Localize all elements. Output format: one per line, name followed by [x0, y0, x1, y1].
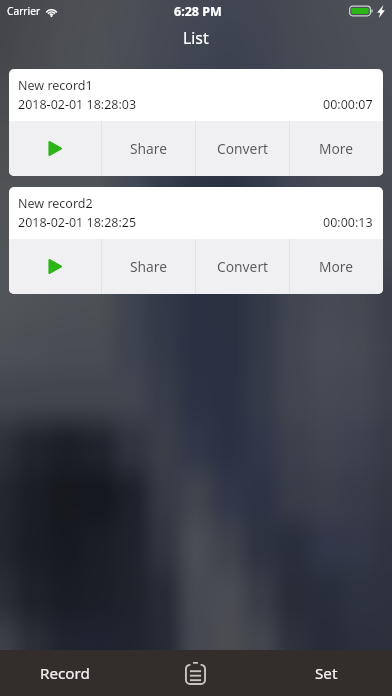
staticText: Share — [130, 257, 168, 276]
button[interactable]: Share — [102, 239, 195, 294]
staticText: 2018-02-01 18:28:03 — [18, 96, 137, 113]
button[interactable]: More — [290, 239, 383, 294]
staticText: New record2 — [18, 195, 93, 212]
button[interactable]: Play — [9, 239, 101, 294]
staticText: Record — [40, 663, 90, 684]
staticText: 2018-02-01 18:28:25 — [18, 214, 137, 231]
button[interactable]: Share — [102, 121, 195, 176]
staticText: Share — [130, 139, 168, 158]
button[interactable]: Convert — [196, 239, 289, 294]
staticText: More — [319, 257, 354, 276]
button[interactable]: Record — [0, 650, 130, 696]
staticText: Convert — [217, 257, 269, 276]
staticText: 00:00:13 — [323, 214, 373, 231]
staticText: 00:00:07 — [323, 96, 373, 113]
staticText: List — [183, 27, 209, 49]
staticText: New record1 — [18, 77, 93, 94]
button[interactable]: Convert — [196, 121, 289, 176]
button[interactable]: List — [130, 650, 261, 696]
button[interactable]: Play — [9, 121, 101, 176]
button[interactable]: Set — [261, 650, 392, 696]
staticText: Set — [315, 663, 338, 684]
staticText: More — [319, 139, 354, 158]
staticText: 6:28 PM — [174, 3, 222, 20]
staticText: Convert — [217, 139, 269, 158]
staticText: Carrier — [7, 4, 41, 18]
button[interactable]: More — [290, 121, 383, 176]
